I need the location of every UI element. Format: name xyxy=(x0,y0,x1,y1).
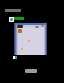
button[interactable]: Action xyxy=(25,69,37,73)
button[interactable]: Logo xyxy=(9,17,14,22)
button[interactable]: Badge xyxy=(13,56,17,59)
